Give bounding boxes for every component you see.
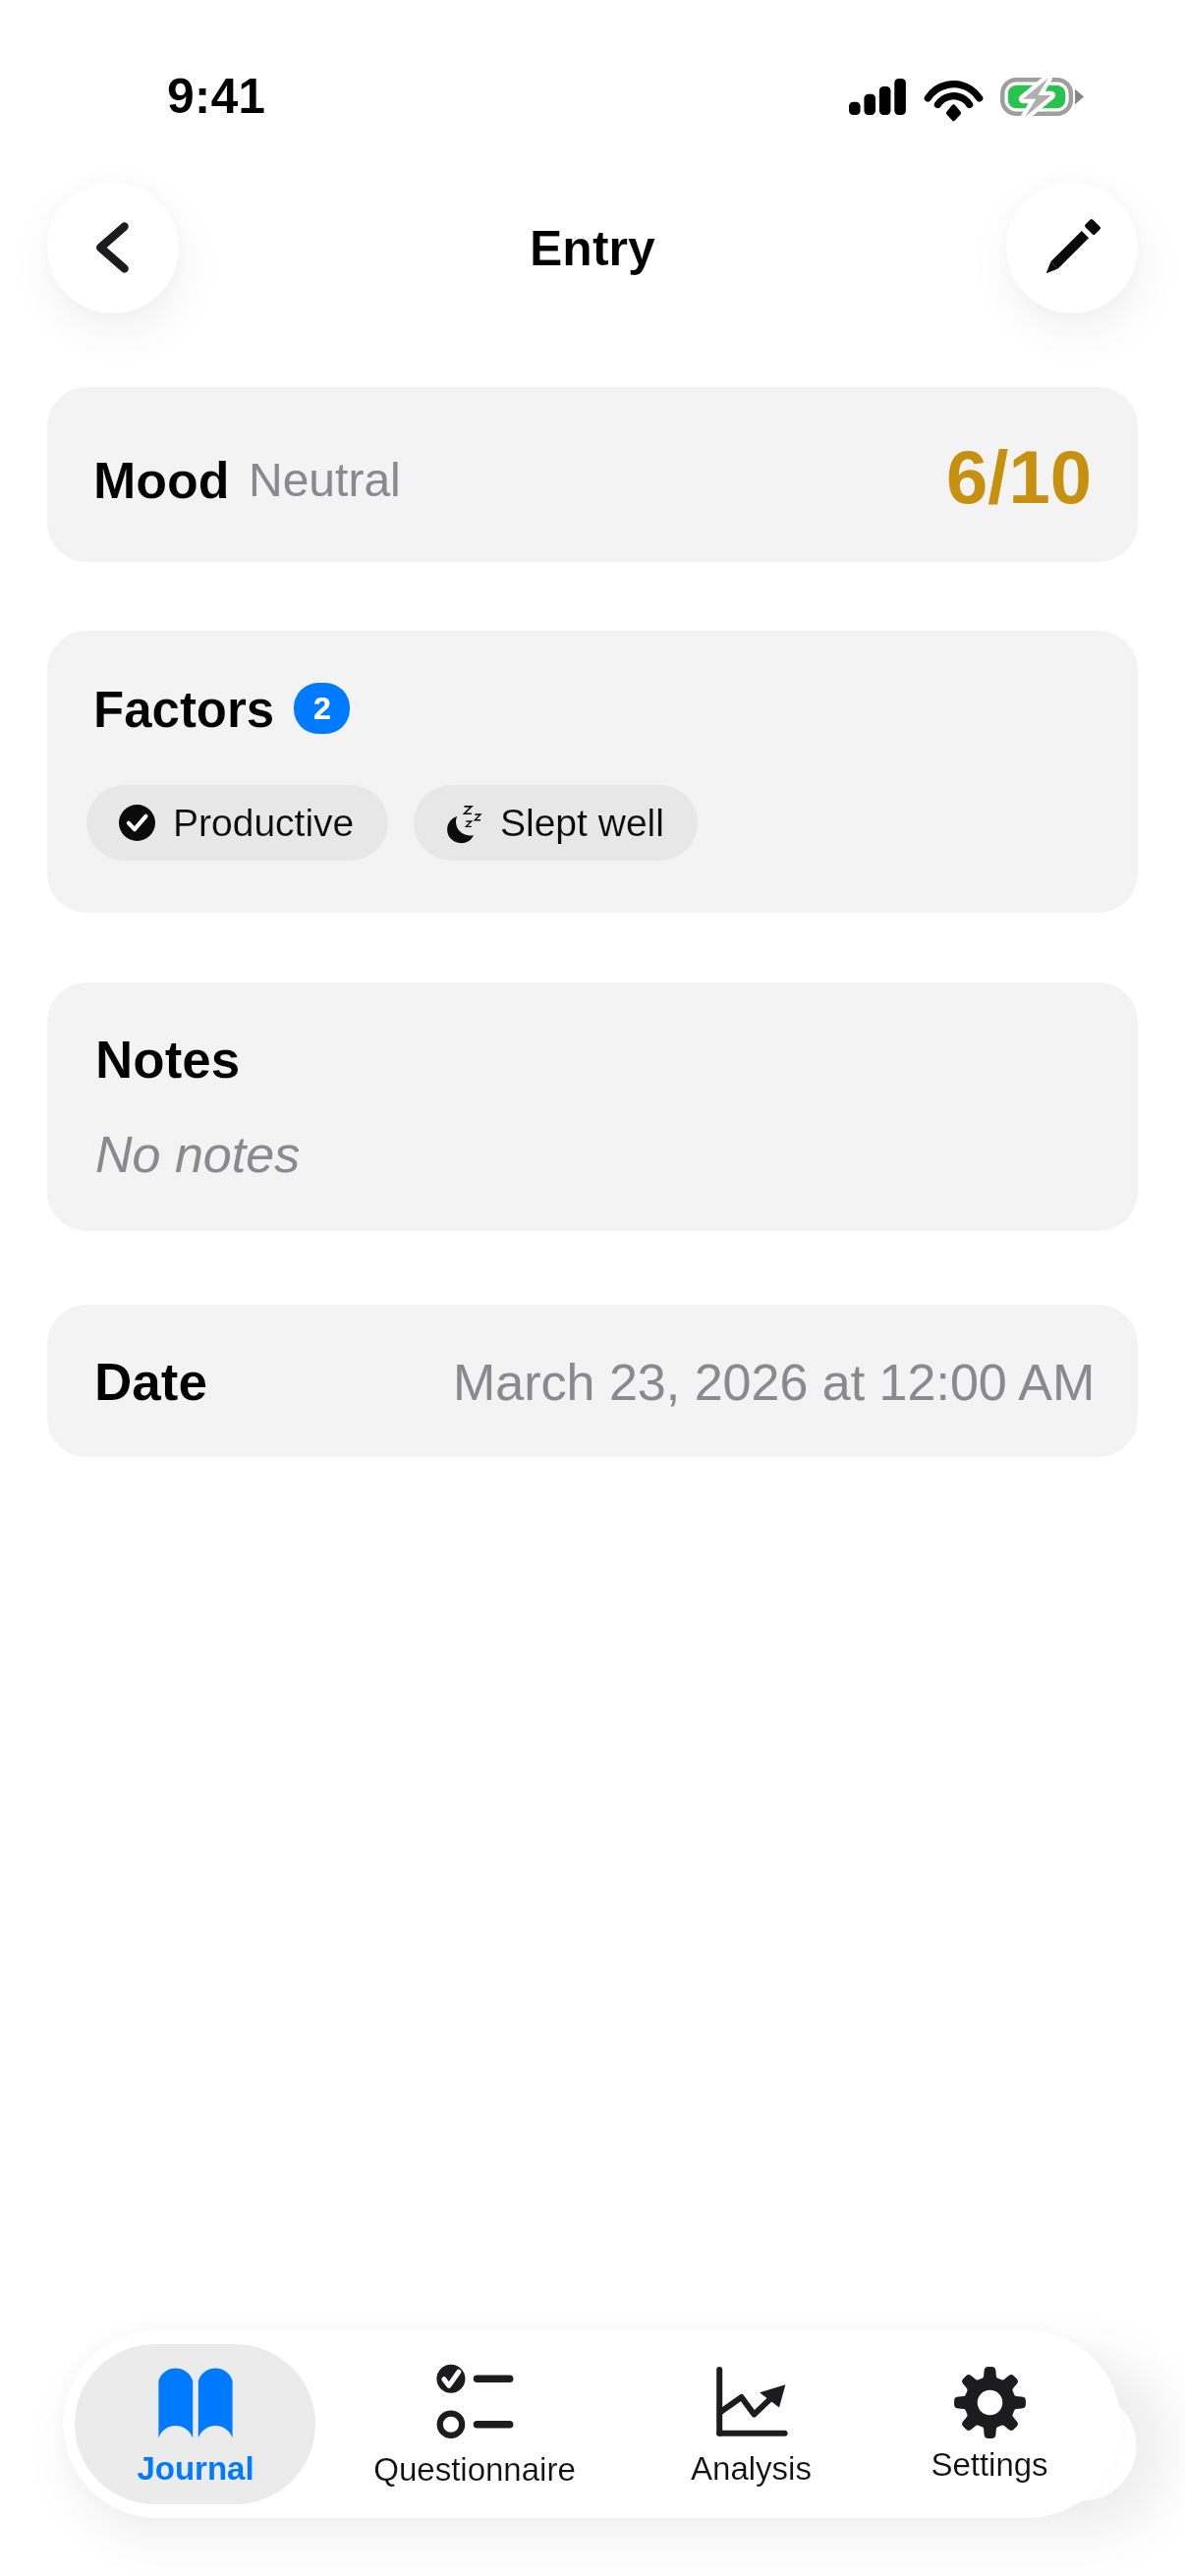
staticText: Factors bbox=[93, 682, 275, 738]
staticText: Neutral bbox=[249, 454, 401, 507]
button[interactable]: Slept well bbox=[414, 785, 698, 861]
staticText: Questionnaire bbox=[373, 2451, 576, 2488]
button[interactable]: Date bbox=[47, 1305, 1138, 1457]
staticText: 9:41 bbox=[167, 69, 266, 124]
staticText: 6/10 bbox=[946, 435, 1092, 519]
staticText: Journal bbox=[137, 2450, 254, 2487]
staticText: Notes bbox=[95, 1031, 241, 1089]
staticText: Settings bbox=[931, 2446, 1048, 2483]
staticText: Analysis bbox=[691, 2450, 812, 2487]
staticText: Productive bbox=[173, 802, 355, 845]
staticText: Mood bbox=[93, 452, 230, 509]
button[interactable]: Edit bbox=[1006, 182, 1138, 313]
staticText: Entry bbox=[530, 221, 655, 276]
button[interactable]: Journal bbox=[75, 2344, 315, 2504]
button[interactable]: Productive bbox=[86, 785, 388, 861]
staticText: March 23, 2026 at 12:00 AM bbox=[453, 1354, 1096, 1411]
button[interactable]: Notes bbox=[47, 982, 1138, 1231]
staticText: Date bbox=[94, 1353, 207, 1411]
staticText: No notes bbox=[95, 1126, 301, 1183]
button[interactable]: Factors bbox=[47, 631, 1138, 913]
button[interactable]: Back bbox=[47, 182, 179, 313]
button[interactable]: Analysis bbox=[633, 2344, 870, 2504]
button[interactable]: Settings bbox=[870, 2344, 1109, 2504]
staticText: Slept well bbox=[500, 802, 664, 845]
button[interactable]: Questionnaire bbox=[315, 2344, 633, 2504]
button[interactable]: Mood bbox=[47, 387, 1138, 562]
staticText: 2 bbox=[313, 691, 331, 726]
